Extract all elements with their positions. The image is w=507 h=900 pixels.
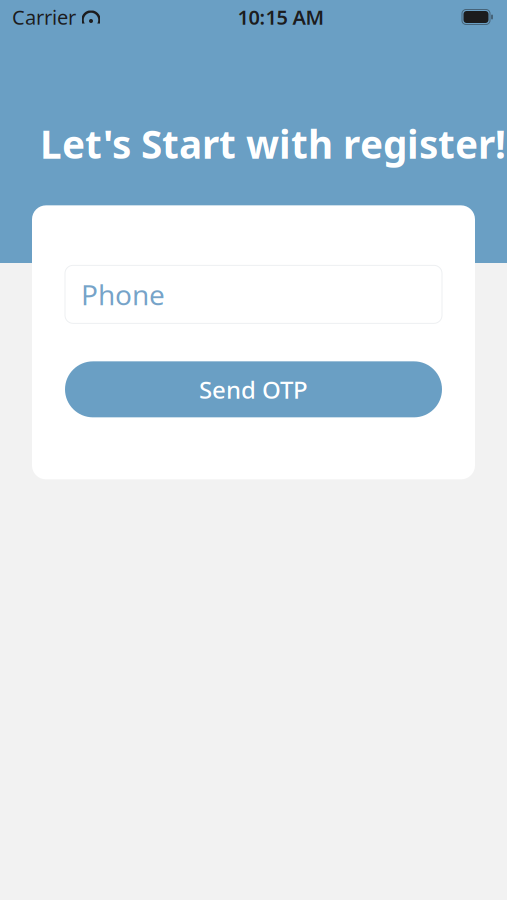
staticText: Phone — [81, 276, 165, 313]
button[interactable]: Phone — [65, 265, 442, 323]
staticText: 10:15 AM — [237, 4, 324, 30]
staticText: Let's Start with register! — [40, 118, 506, 169]
button[interactable]: Send OTP — [65, 361, 442, 417]
staticText: Send OTP — [199, 373, 308, 405]
staticText: Carrier — [12, 4, 76, 30]
